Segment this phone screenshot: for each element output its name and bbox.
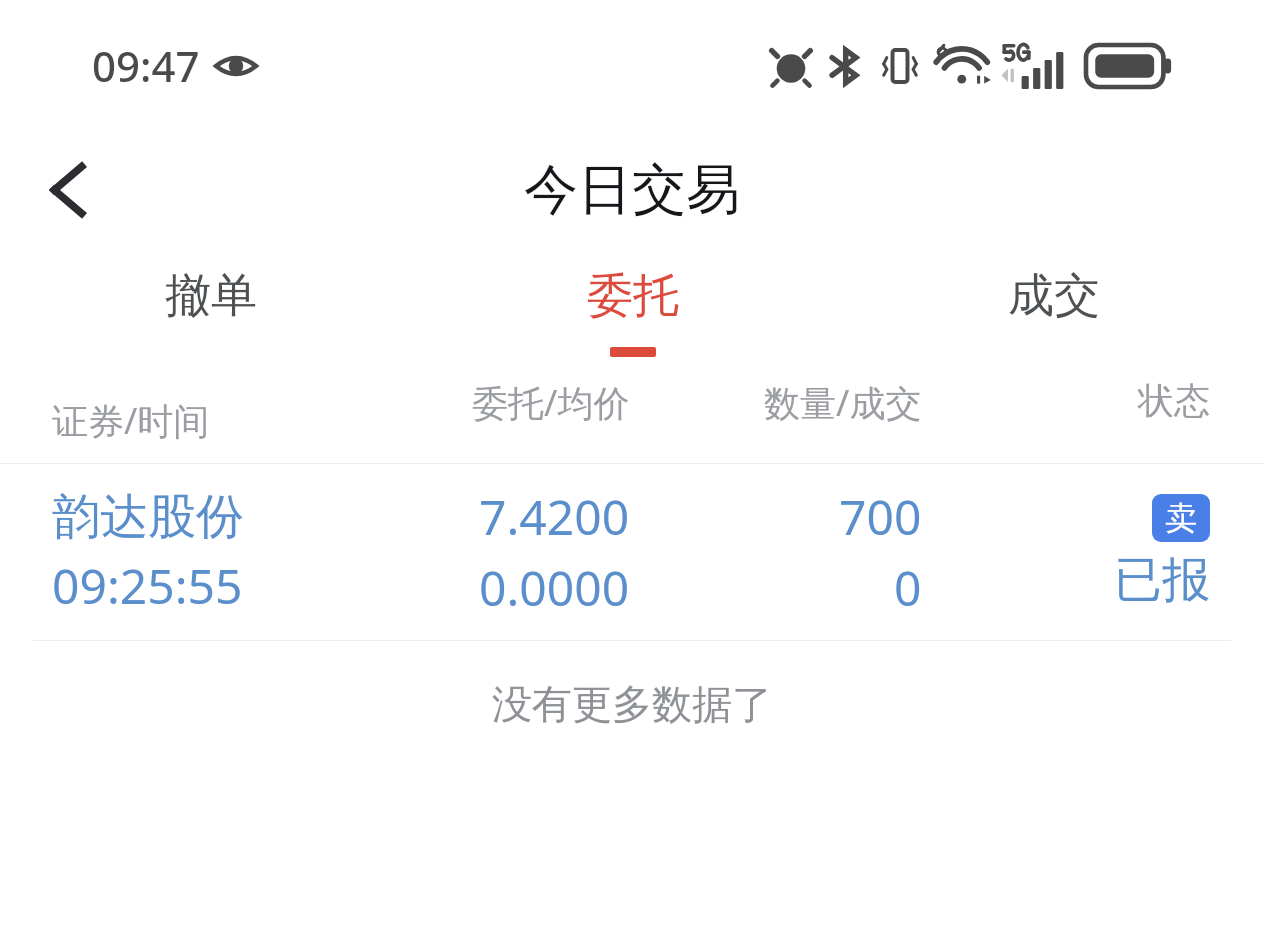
staticText: 09:25:55: [52, 553, 243, 618]
staticText: 0.0000: [479, 555, 630, 620]
staticText: 今日交易: [524, 156, 740, 224]
button[interactable]: 委托: [422, 248, 843, 378]
button[interactable]: Back: [20, 142, 116, 238]
staticText: 09:47: [92, 37, 200, 94]
button[interactable]: 成交: [843, 248, 1264, 378]
staticText: 已报: [1114, 550, 1210, 610]
staticText: 700: [839, 484, 922, 549]
staticText: 证券/时间: [52, 396, 210, 445]
staticText: 卖: [1165, 498, 1197, 538]
button[interactable]: 韵达股份: [0, 464, 1264, 640]
staticText: 7.4200: [479, 484, 630, 549]
staticText: 没有更多数据了: [492, 679, 772, 729]
staticText: 委托/均价: [472, 378, 630, 427]
staticText: 数量/成交: [764, 378, 922, 427]
staticText: 撤单: [165, 267, 257, 325]
staticText: 0: [894, 555, 922, 620]
staticText: 成交: [1008, 267, 1100, 325]
button[interactable]: 撤单: [0, 248, 422, 378]
staticText: 状态: [1138, 378, 1210, 423]
staticText: 委托: [587, 267, 679, 325]
staticText: 韵达股份: [52, 487, 244, 547]
